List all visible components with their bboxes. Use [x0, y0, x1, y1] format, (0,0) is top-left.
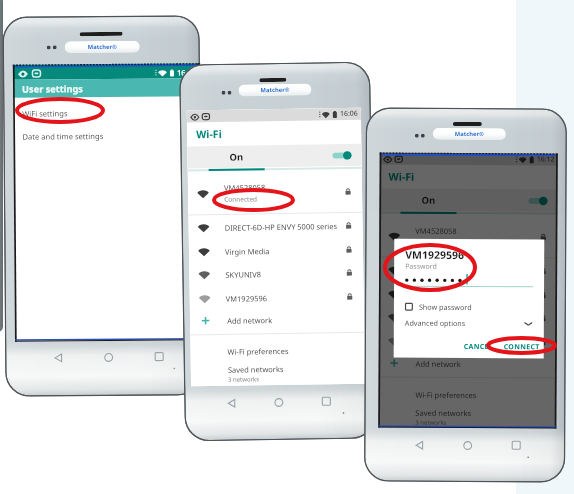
button[interactable]: Saved networks — [191, 361, 365, 385]
button[interactable]: On — [187, 144, 362, 168]
button[interactable]: Virgin Media — [189, 239, 363, 262]
button[interactable]: Home — [459, 437, 475, 453]
button[interactable]: VM1929596 — [190, 286, 364, 309]
staticText: Matcher® — [455, 130, 485, 138]
button[interactable]: Recent apps — [318, 393, 334, 409]
staticText: Wi-Fi preferences — [415, 390, 477, 400]
button[interactable]: Date and time settings — [13, 123, 200, 148]
button[interactable]: Recent apps — [508, 437, 524, 453]
staticText: SKYUNIV8 — [225, 269, 261, 280]
staticText: Matcher® — [88, 43, 118, 51]
staticText: User settings — [22, 82, 83, 96]
staticText: 16:01 — [177, 67, 197, 77]
button[interactable]: VM4528058 — [188, 181, 362, 204]
staticText: Advanced options — [405, 318, 466, 328]
staticText: Wi-Fi — [196, 127, 222, 141]
staticText: DIRECT-6D-HP ENVY 5000 series — [415, 266, 528, 276]
button[interactable]: Back — [411, 437, 427, 453]
button[interactable]: Wi-Fi preferences — [190, 339, 365, 362]
staticText: 16:06 — [340, 109, 358, 119]
staticText: 3 networks — [228, 375, 260, 384]
staticText: WiFi settings — [22, 108, 68, 119]
staticText: VM1929596 — [405, 248, 464, 262]
staticText: DIRECT-6D-HP ENVY 5000 series — [224, 221, 338, 233]
button[interactable]: DIRECT-6D-HP ENVY 5000 series — [379, 259, 557, 281]
staticText: VM1929596 — [226, 293, 268, 304]
staticText: On — [229, 150, 244, 164]
staticText: 3 networks — [415, 419, 447, 427]
button[interactable]: Back — [50, 349, 66, 365]
staticText: Add network — [416, 359, 462, 369]
staticText: Virgin Media — [225, 246, 270, 257]
button[interactable]: Add network — [190, 308, 364, 331]
button[interactable]: CANCEL — [460, 339, 498, 355]
staticText: Password — [405, 262, 437, 272]
button[interactable]: Recent apps — [151, 348, 167, 365]
button[interactable]: VM4528058 — [379, 225, 557, 247]
staticText: Date and time settings — [22, 131, 103, 142]
staticText: Virgin Media — [415, 290, 460, 300]
button[interactable]: Home — [270, 394, 286, 410]
button[interactable]: Wi-Fi preferences — [378, 383, 556, 405]
button[interactable]: Add network — [379, 352, 557, 374]
button[interactable]: SKYUNIV8 — [189, 262, 363, 285]
button[interactable]: On — [379, 188, 557, 211]
button[interactable]: Virgin Media — [379, 283, 557, 305]
staticText: VM4528058 — [224, 182, 266, 193]
button[interactable]: Show password — [405, 302, 472, 312]
button[interactable]: Home — [100, 349, 116, 365]
staticText: Matcher® — [260, 86, 290, 94]
staticText: Saved networks — [228, 364, 284, 375]
staticText: Wi-Fi — [389, 170, 415, 184]
staticText: VM4528058 — [415, 226, 457, 236]
button[interactable]: WiFi settings — [13, 100, 199, 125]
button[interactable]: User settings — [13, 78, 199, 98]
staticText: Saved networks — [415, 408, 471, 418]
staticText: CANCEL — [464, 342, 494, 352]
button[interactable]: CONNECT — [500, 339, 544, 355]
staticText: Connected — [224, 194, 257, 204]
staticText: Connected — [415, 238, 448, 247]
staticText: Show password — [419, 302, 472, 312]
staticText: Wi-Fi preferences — [227, 346, 289, 357]
staticText: 16:12 — [537, 154, 555, 164]
button[interactable]: Back — [223, 395, 239, 411]
staticText: Add network — [227, 315, 273, 326]
button[interactable]: VM1929596 — [379, 330, 557, 352]
button[interactable]: Advanced options — [405, 318, 533, 328]
staticText: On — [421, 194, 436, 207]
button[interactable]: SKYUNIV8 — [379, 306, 557, 328]
button[interactable]: Saved networks — [378, 405, 556, 428]
staticText: CONNECT — [504, 342, 540, 352]
staticText: SKYUNIV8 — [415, 313, 451, 323]
button[interactable]: DIRECT-6D-HP ENVY 5000 series — [188, 215, 363, 238]
